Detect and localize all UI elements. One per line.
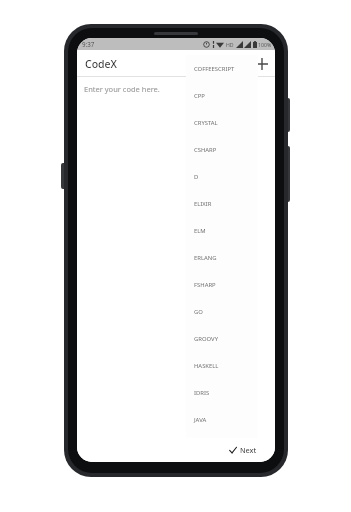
- staticText: FSHARP: [194, 281, 216, 289]
- staticText: COFFEESCRIPT: [194, 65, 235, 73]
- button[interactable]: CRYSTAL: [186, 109, 258, 136]
- staticText: ERLANG: [194, 254, 217, 262]
- staticText: CRYSTAL: [194, 119, 218, 127]
- staticText: 100%: [258, 41, 272, 48]
- staticText: JAVA: [194, 416, 207, 424]
- button[interactable]: COFFEESCRIPT: [186, 55, 258, 82]
- staticText: CPP: [194, 92, 205, 100]
- button[interactable]: ELIXIR: [186, 190, 258, 217]
- staticText: CodeX: [85, 57, 118, 71]
- staticText: ELIXIR: [194, 200, 212, 208]
- button[interactable]: HASKELL: [186, 352, 258, 379]
- staticText: GO: [194, 308, 203, 316]
- staticText: 9:37: [82, 40, 95, 48]
- button[interactable]: D: [186, 163, 258, 190]
- staticText: HASKELL: [194, 362, 219, 370]
- staticText: HD: [226, 41, 234, 48]
- button[interactable]: ELM: [186, 217, 258, 244]
- staticText: D: [194, 173, 199, 181]
- staticText: CSHARP: [194, 146, 217, 154]
- button[interactable]: JAVA: [186, 406, 258, 433]
- button[interactable]: CSHARP: [186, 136, 258, 163]
- button[interactable]: IDRIS: [186, 379, 258, 406]
- button[interactable]: ERLANG: [186, 244, 258, 271]
- staticText: GROOVY: [194, 335, 218, 343]
- staticText: Next: [240, 445, 257, 455]
- button[interactable]: CPP: [186, 82, 258, 109]
- button[interactable]: Add: [249, 51, 275, 77]
- staticText: IDRIS: [194, 389, 210, 397]
- button[interactable]: Next: [218, 438, 267, 461]
- staticText: ELM: [194, 227, 206, 235]
- button[interactable]: GO: [186, 298, 258, 325]
- button[interactable]: GROOVY: [186, 325, 258, 352]
- button[interactable]: FSHARP: [186, 271, 258, 298]
- staticText: Enter your code here.: [84, 84, 160, 94]
